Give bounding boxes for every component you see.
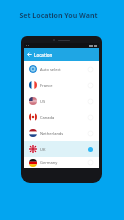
staticText: France [40,83,53,88]
staticText: Germany [40,160,58,165]
button[interactable]: Canada [24,109,99,125]
button[interactable]: Back [24,48,34,61]
button[interactable]: UK [24,141,99,157]
button[interactable]: Netherlands [24,125,99,141]
button[interactable]: Germany [24,157,99,168]
staticText: Location [34,52,53,58]
staticText: Netherlands [40,131,64,136]
button[interactable]: France [24,77,99,93]
staticText: US [40,99,46,104]
button[interactable]: Auto select [24,61,99,77]
staticText: Auto select [40,67,61,72]
staticText: UK [40,147,46,152]
staticText: Canada [40,115,55,120]
staticText: Set Location You Want [19,11,98,21]
button[interactable]: US [24,93,99,109]
